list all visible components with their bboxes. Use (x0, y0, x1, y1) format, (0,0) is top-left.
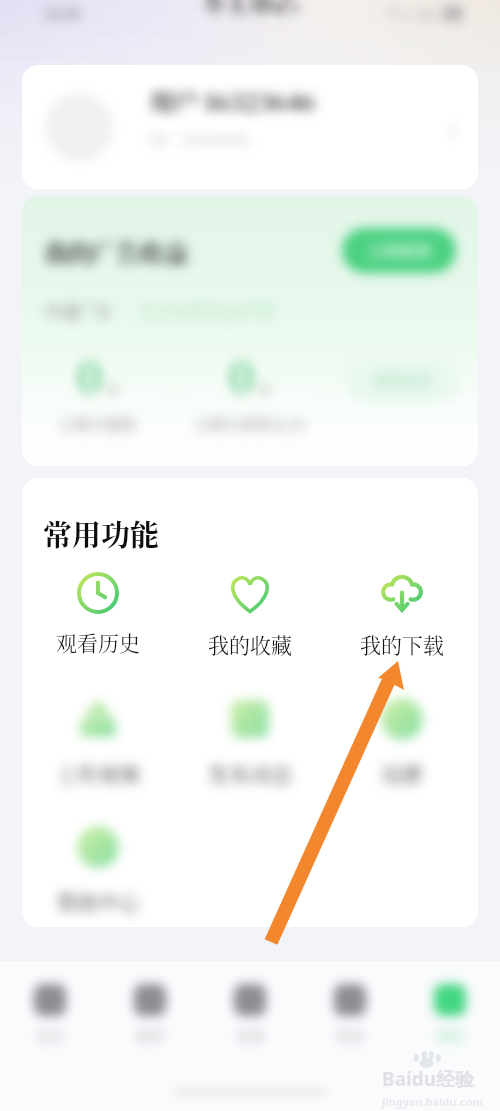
staticText: 已累计提现 (60, 413, 136, 435)
staticText: 我的广告收益 (44, 234, 188, 268)
button[interactable]: 推荐 (100, 984, 200, 1045)
staticText: 立即提现 (367, 239, 432, 262)
staticText: 查看更多 (372, 369, 433, 391)
staticText: 设置 (381, 758, 423, 788)
staticText: ID：16323646 (150, 128, 249, 150)
staticText: 0 (229, 345, 254, 405)
staticText: 我的收藏 (208, 630, 292, 660)
button[interactable]: 我的收藏 (174, 572, 326, 659)
staticText: 14:06 (44, 2, 82, 24)
button[interactable]: 发布动态 (174, 693, 326, 788)
staticText: 观看历史 (56, 627, 140, 657)
button[interactable]: 我的广告收益 (22, 196, 478, 466)
button[interactable]: 用户 16323646 (22, 65, 478, 189)
button[interactable]: 设置 (326, 693, 478, 788)
staticText: 发现 (236, 1025, 264, 1045)
other: 我的下载 (380, 573, 424, 617)
button[interactable]: 消息 (300, 984, 400, 1045)
staticText: 常用功能 (43, 513, 160, 555)
staticText: 元 (104, 377, 120, 399)
button[interactable]: 我的收藏 (174, 573, 326, 660)
staticText: 0 (77, 345, 102, 405)
button[interactable]: 观看历史 (22, 572, 174, 657)
button[interactable]: 帮助中心 (22, 821, 174, 916)
button[interactable]: 观看历史 (22, 573, 174, 658)
button[interactable]: 首页 (0, 984, 100, 1045)
other: 观看历史 (77, 573, 119, 615)
button[interactable]: 发现 (200, 984, 300, 1045)
staticText: 已累计获得元/分 (195, 413, 306, 435)
staticText: 点击查看收益详情 (138, 298, 274, 322)
other: 观看历史 (77, 572, 119, 614)
staticText: 观看历史 (56, 628, 140, 658)
staticText: 开通广告 (44, 298, 112, 322)
staticText: 我的下载 (360, 630, 444, 660)
staticText: Baidu经验 (382, 1066, 475, 1092)
button[interactable]: 查看更多 (345, 358, 459, 402)
staticText: 帮助中心 (56, 886, 140, 916)
other: 我的收藏 (228, 573, 272, 617)
other: 我的下载 (380, 572, 424, 616)
button[interactable]: 我的下载 (326, 572, 478, 659)
button[interactable]: 上传视频 (22, 693, 174, 788)
staticText: 我的下载 (360, 629, 444, 659)
staticText: 常用功能 (43, 514, 160, 556)
staticText: 推荐 (136, 1025, 164, 1045)
staticText: ↑↓ □□ ▌▌ (386, 4, 466, 22)
staticText: 用户 16323646 (150, 83, 315, 117)
button[interactable]: 我的 (400, 984, 500, 1045)
staticText: 我的收藏 (208, 629, 292, 659)
staticText: 上传视频 (56, 758, 140, 788)
staticText: 发布动态 (208, 758, 292, 788)
button[interactable]: 立即提现 (342, 228, 456, 273)
staticText: 元 (256, 377, 272, 399)
staticText: 我的 (436, 1025, 464, 1045)
other: 我的收藏 (228, 572, 272, 616)
staticText: 消息 (336, 1025, 364, 1045)
staticText: 个人中心 (202, 0, 298, 14)
staticText: jingyan.baidu.com (382, 1094, 484, 1109)
button[interactable]: 我的下载 (326, 573, 478, 660)
